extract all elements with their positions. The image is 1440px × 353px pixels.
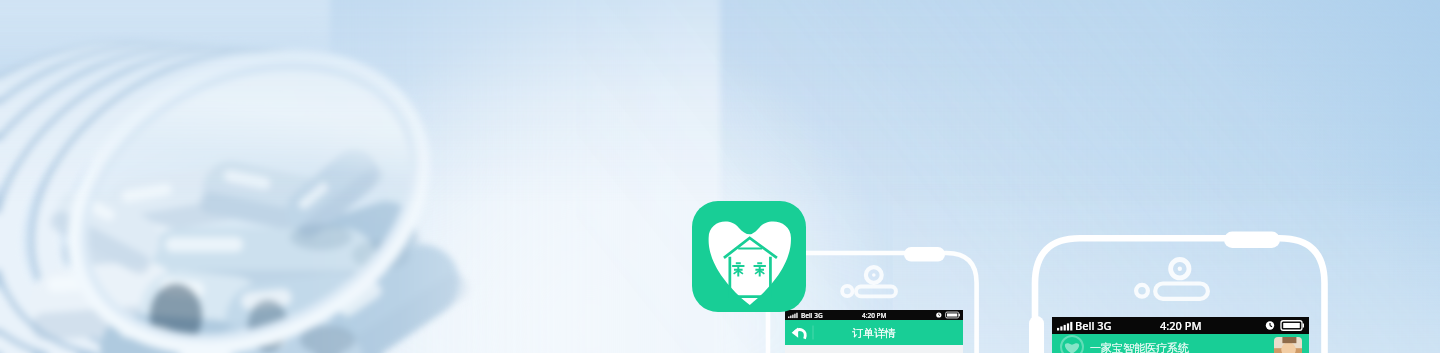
staticText: Bell 3G bbox=[1075, 318, 1112, 333]
staticText: 4:20 PM bbox=[862, 311, 887, 320]
staticText: 一家宝智能医疗系统 bbox=[1090, 341, 1189, 353]
button[interactable]: Profile photo bbox=[1274, 337, 1302, 353]
button[interactable]: Yi Jia Bao app icon bbox=[692, 201, 806, 312]
staticText: 4:20 PM bbox=[1160, 318, 1202, 333]
staticText: Bell 3G bbox=[801, 311, 823, 320]
button[interactable]: Back bbox=[791, 320, 809, 345]
staticText: 订单详情 bbox=[852, 326, 896, 340]
